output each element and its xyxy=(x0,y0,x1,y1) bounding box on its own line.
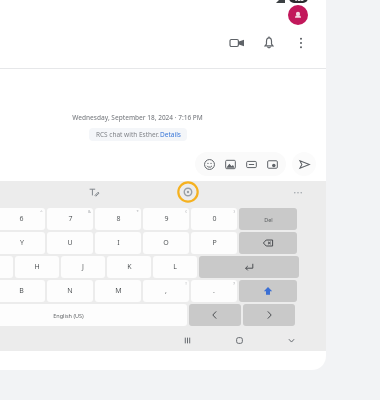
button[interactable]: 9 xyxy=(143,208,189,230)
staticText: J xyxy=(82,262,84,272)
staticText: K xyxy=(127,262,132,272)
button[interactable]: Shift xyxy=(239,280,297,302)
button[interactable]: Video call xyxy=(224,30,250,56)
staticText: ^ xyxy=(40,209,43,214)
staticText: O xyxy=(163,238,169,248)
button[interactable]: Y xyxy=(0,232,45,254)
staticText: Del xyxy=(264,216,273,223)
staticText: ) xyxy=(233,209,235,214)
button[interactable]: . xyxy=(191,280,237,302)
button[interactable]: 6 xyxy=(0,208,45,230)
button[interactable]: Recent apps xyxy=(178,331,196,349)
button[interactable]: Keyboard settings xyxy=(177,181,199,203)
staticText: U xyxy=(67,238,73,248)
button[interactable]: Account xyxy=(288,5,308,25)
button[interactable]: , xyxy=(143,280,189,302)
button[interactable]: Move cursor right xyxy=(243,304,295,326)
button[interactable]: Home xyxy=(230,331,248,349)
staticText: 7 xyxy=(68,214,73,224)
staticText: . xyxy=(213,286,215,296)
button[interactable]: RCS chat with Esther. xyxy=(95,130,181,139)
button[interactable]: Enter xyxy=(199,256,299,278)
button[interactable]: O xyxy=(143,232,189,254)
button[interactable]: Emoji xyxy=(200,155,218,173)
button[interactable]: B xyxy=(0,280,45,302)
button[interactable]: Gallery xyxy=(221,155,239,173)
button[interactable]: J xyxy=(61,256,105,278)
staticText: English (US) xyxy=(53,312,84,319)
staticText: Y xyxy=(20,238,24,248)
button[interactable]: Backspace xyxy=(239,232,297,254)
button[interactable]: K xyxy=(107,256,151,278)
button[interactable]: M xyxy=(95,280,141,302)
staticText: & xyxy=(88,209,91,214)
staticText: , xyxy=(165,286,167,296)
button[interactable]: Send xyxy=(292,152,316,176)
staticText: 0 xyxy=(212,214,217,224)
staticText: Details xyxy=(160,130,181,139)
staticText: I xyxy=(117,238,120,248)
button[interactable]: More options xyxy=(288,30,314,56)
button[interactable]: P xyxy=(191,232,237,254)
staticText: 6 xyxy=(19,214,24,224)
staticText: H xyxy=(34,262,40,272)
staticText: L xyxy=(173,262,177,272)
button[interactable]: Move cursor left xyxy=(189,304,241,326)
button[interactable]: Stickers xyxy=(242,155,260,173)
staticText: ! xyxy=(185,281,187,286)
button[interactable]: English (US) xyxy=(0,304,187,326)
button[interactable]: 7 xyxy=(47,208,93,230)
button[interactable]: Text editing xyxy=(84,182,104,202)
button[interactable]: Camera xyxy=(263,155,281,173)
staticText: ( xyxy=(185,209,187,214)
button[interactable]: N xyxy=(47,280,93,302)
staticText: M xyxy=(115,286,122,296)
button[interactable]: Hide keyboard xyxy=(282,331,300,349)
staticText: 9 xyxy=(164,214,169,224)
button[interactable]: More xyxy=(288,182,308,202)
staticText: RCS chat with Esther. xyxy=(95,130,160,139)
button[interactable]: 0 xyxy=(191,208,237,230)
staticText: 8 xyxy=(116,214,121,224)
staticText: Wednesday, September 18, 2024 · 7:16 PM xyxy=(72,113,203,122)
button[interactable]: Notifications xyxy=(256,30,282,56)
button[interactable]: 8 xyxy=(95,208,141,230)
button[interactable]: U xyxy=(47,232,93,254)
staticText: P xyxy=(212,238,217,248)
button[interactable]: I xyxy=(95,232,141,254)
button[interactable]: H xyxy=(15,256,59,278)
button[interactable]: Del xyxy=(239,208,297,230)
button[interactable]: L xyxy=(153,256,197,278)
staticText: 100 xyxy=(294,0,304,2)
staticText: N xyxy=(67,286,73,296)
staticText: ? xyxy=(233,281,235,286)
staticText: B xyxy=(19,286,24,296)
staticText: * xyxy=(136,209,139,214)
